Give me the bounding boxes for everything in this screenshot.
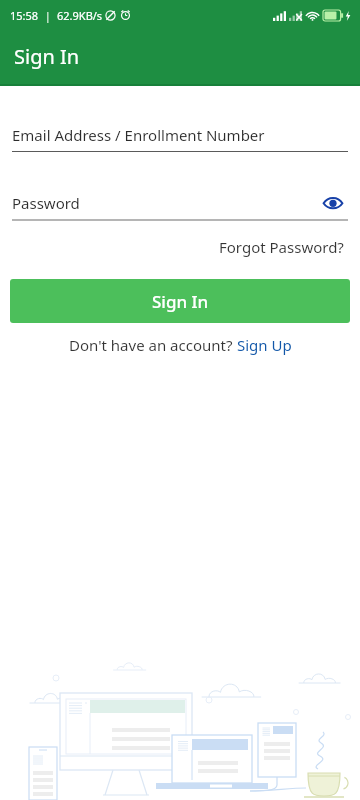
button[interactable]: Email Address / Enrollment Number — [12, 122, 348, 148]
staticText: Email Address / Enrollment Number — [12, 125, 265, 145]
button[interactable]: Sign Up — [237, 335, 292, 355]
staticText: Don't have an account? — [69, 335, 237, 355]
button[interactable]: Show password — [318, 190, 348, 216]
button[interactable]: Forgot Password? — [215, 233, 348, 261]
staticText: Password — [12, 193, 80, 213]
staticText: 15:58 — [10, 8, 39, 23]
staticText: 62.9KB/s — [57, 8, 103, 23]
staticText: Sign Up — [237, 335, 292, 355]
button[interactable]: Sign In — [10, 279, 350, 323]
staticText: | — [39, 8, 57, 23]
staticText: Sign In — [152, 290, 209, 313]
button[interactable]: Password — [12, 190, 348, 216]
staticText: Sign In — [14, 43, 80, 70]
staticText: Forgot Password? — [219, 237, 344, 257]
